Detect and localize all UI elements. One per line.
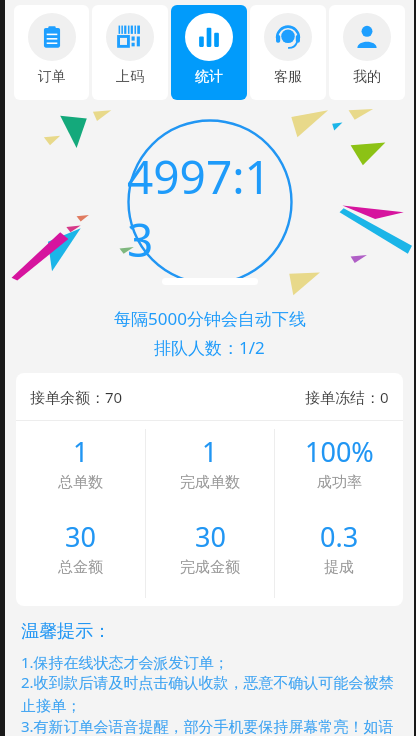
staticText: 成功率	[317, 473, 362, 492]
staticText: 0.3	[320, 518, 359, 555]
staticText: 客服	[274, 68, 302, 86]
staticText: 2.收到款后请及时点击确认收款，恶意不确认可能会被禁止接单；	[21, 672, 402, 716]
staticText: 3.有新订单会语音提醒，部分手机要保持屏幕常亮！如语音	[21, 716, 402, 736]
staticText: 统计	[195, 68, 223, 86]
staticText: 每隔5000分钟会自动下线	[114, 307, 306, 330]
button[interactable]: 订单	[14, 5, 89, 100]
button[interactable]: 客服	[250, 5, 326, 100]
staticText: 接单冻结：0	[305, 387, 389, 407]
staticText: 我的	[353, 68, 381, 86]
staticText: 上码	[116, 68, 144, 86]
button[interactable]: 上码	[92, 5, 168, 100]
button[interactable]: 统计	[171, 5, 247, 100]
staticText: 完成单数	[180, 473, 240, 492]
staticText: 总单数	[58, 473, 103, 492]
staticText: 温馨提示：	[21, 620, 111, 643]
staticText: 4997:13	[127, 145, 293, 271]
staticText: 完成金额	[180, 558, 240, 577]
staticText: 排队人数：1/2	[154, 336, 265, 359]
staticText: 接单余额：70	[30, 387, 123, 407]
staticText: 总金额	[58, 558, 103, 577]
staticText: 提成	[324, 558, 354, 577]
staticText: 1.保持在线状态才会派发订单；	[21, 652, 229, 672]
staticText: 1	[73, 433, 89, 470]
staticText: 30	[65, 518, 96, 555]
staticText: 订单	[38, 68, 66, 86]
button[interactable]: 我的	[329, 5, 405, 100]
staticText: 100%	[305, 433, 374, 470]
staticText: 1	[202, 433, 218, 470]
staticText: 30	[195, 518, 226, 555]
